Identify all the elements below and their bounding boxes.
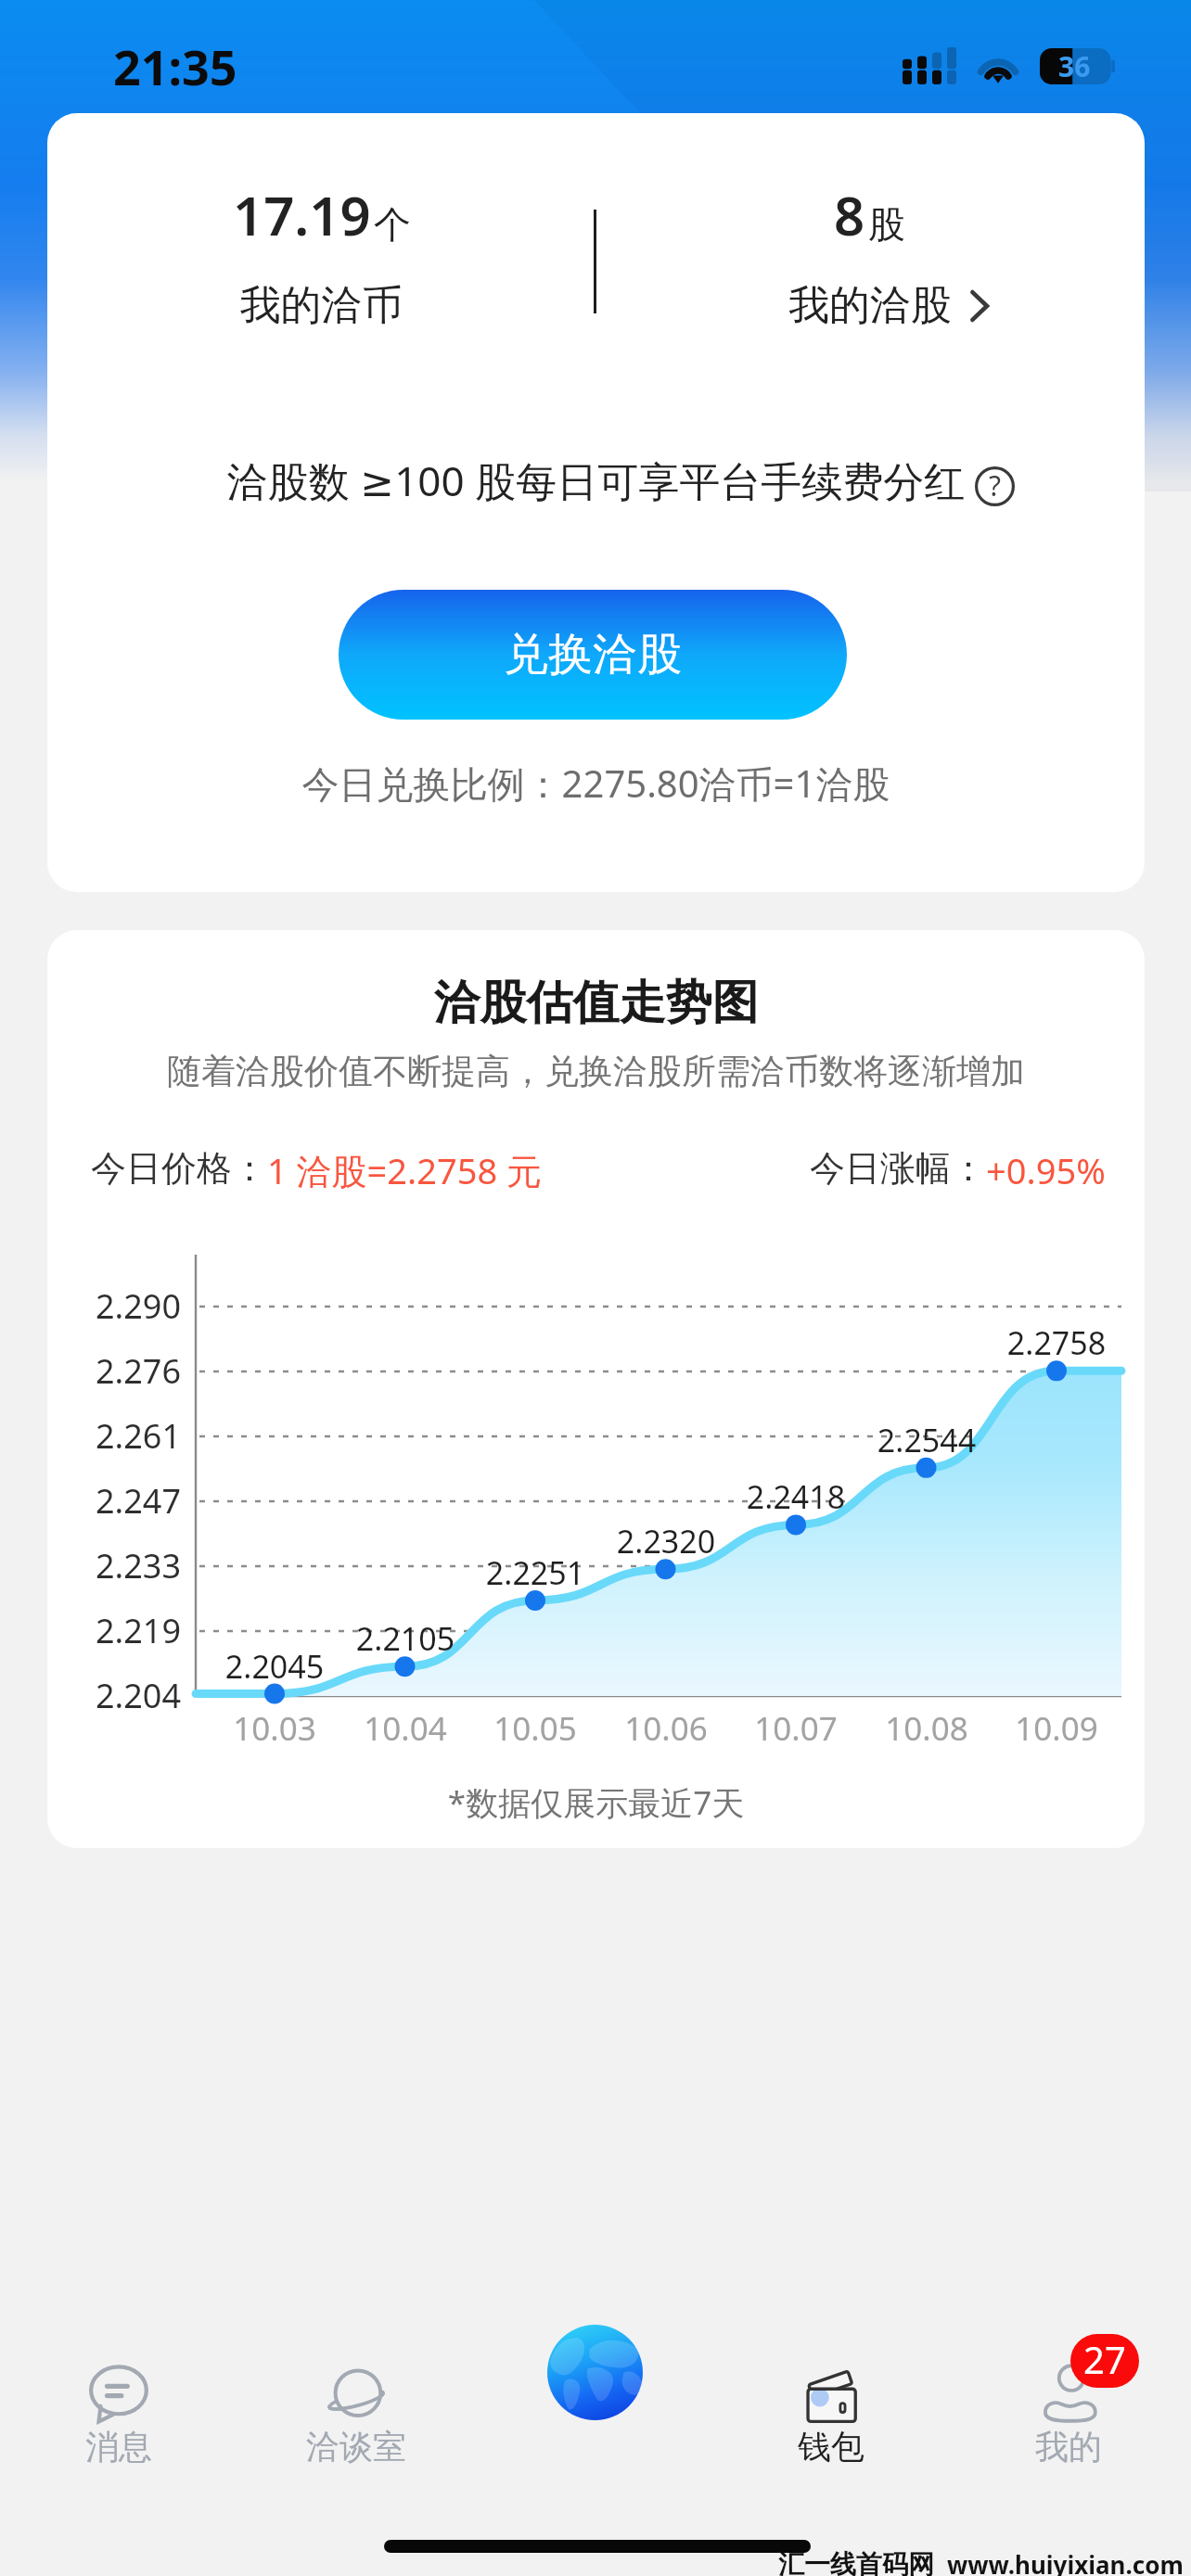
staticText: 36 — [1058, 47, 1091, 83]
staticText: 2.204 — [47, 1673, 181, 1718]
staticText: 我的洽币 — [47, 280, 595, 331]
staticText: 今日涨幅： — [810, 1146, 986, 1191]
staticText: 兑换洽股 — [504, 627, 682, 682]
staticText: 2.2418 — [722, 1475, 870, 1518]
staticText: 2.219 — [47, 1608, 181, 1653]
staticText: 钱包 — [712, 2426, 950, 2468]
staticText: www.huiyixian.com — [947, 2548, 1184, 2576]
staticText: 汇一线首码网 — [778, 2548, 934, 2576]
staticText: 洽股估值走势图 — [47, 974, 1145, 1032]
staticText: 个 — [374, 201, 411, 248]
staticText: 我的 — [950, 2426, 1187, 2468]
staticText: 8 — [834, 178, 865, 251]
button[interactable]: 8 — [595, 178, 1144, 345]
staticText: 10.09 — [982, 1706, 1131, 1751]
staticText: 洽股数 ≥100 股每日可享平台手续费分红 — [47, 453, 1145, 508]
staticText: 2.2251 — [461, 1551, 609, 1594]
staticText: ? — [989, 466, 1002, 504]
button[interactable]: 我的 — [950, 2318, 1187, 2476]
staticText: 10.08 — [852, 1706, 1001, 1751]
button[interactable]: 世界 — [547, 2325, 643, 2420]
staticText: 我的洽股 — [788, 280, 952, 331]
staticText: 10.07 — [722, 1706, 870, 1751]
button[interactable]: 钱包 — [712, 2318, 950, 2476]
staticText: 17.19 — [233, 178, 371, 251]
staticText: 10.04 — [331, 1706, 480, 1751]
staticText: 10.03 — [200, 1706, 349, 1751]
button[interactable]: 洽谈室 — [237, 2318, 475, 2476]
staticText: 2.276 — [47, 1348, 181, 1394]
button[interactable]: 兑换洽股 — [339, 590, 847, 720]
staticText: 今日价格： — [91, 1146, 267, 1191]
staticText: 消息 — [0, 2426, 237, 2468]
staticText: 27 — [1083, 2334, 1126, 2384]
staticText: 2.233 — [47, 1543, 181, 1588]
staticText: 今日兑换比例：2275.80洽币=1洽股 — [47, 758, 1145, 809]
button[interactable]: 消息 — [0, 2318, 237, 2476]
staticText: 2.247 — [47, 1478, 181, 1524]
staticText: *数据仅展示最近7天 — [47, 1780, 1145, 1825]
staticText: 21:35 — [113, 33, 237, 99]
staticText: 2.2105 — [331, 1617, 480, 1660]
staticText: 2.290 — [47, 1283, 181, 1329]
staticText: 2.2544 — [852, 1419, 1001, 1461]
staticText: 10.05 — [461, 1706, 609, 1751]
button[interactable]: 说明 — [975, 466, 1015, 506]
staticText: 1 洽股=2.2758 元 — [267, 1146, 543, 1194]
staticText: 2.2320 — [592, 1520, 740, 1562]
staticText: 洽谈室 — [237, 2426, 475, 2468]
staticText: 股 — [868, 201, 905, 248]
staticText: +0.95% — [986, 1146, 1106, 1194]
button[interactable]: 17.19 — [47, 171, 595, 330]
staticText: 随着洽股价值不断提高，兑换洽股所需洽币数将逐渐增加 — [47, 1050, 1145, 1093]
staticText: 10.06 — [592, 1706, 740, 1751]
staticText: 2.2045 — [200, 1645, 349, 1688]
staticText: 2.2758 — [982, 1321, 1131, 1364]
staticText: 2.261 — [47, 1413, 181, 1459]
